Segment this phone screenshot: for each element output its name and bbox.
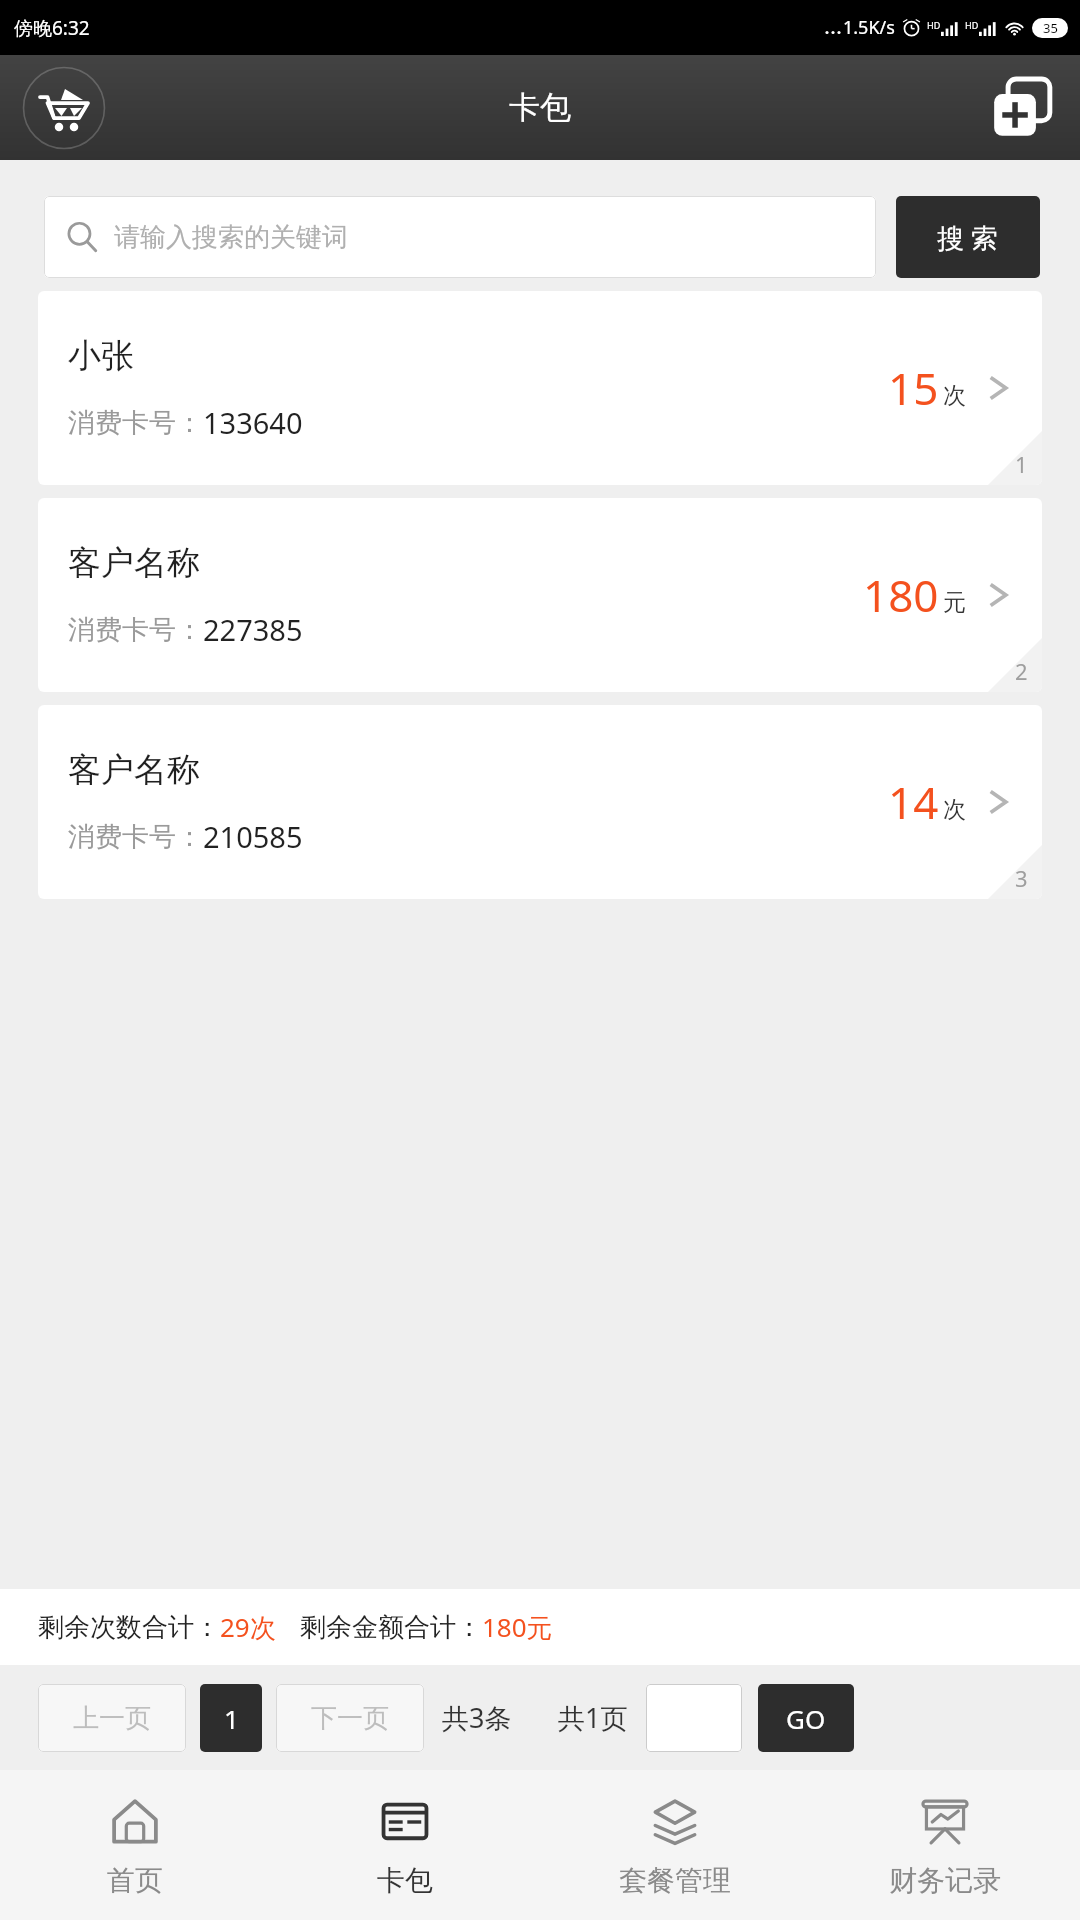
staticText: 客户名称 xyxy=(68,542,200,584)
staticText: GO xyxy=(786,1701,826,1736)
staticText: 小张 xyxy=(68,335,134,377)
staticText: 客户名称 xyxy=(68,749,200,791)
staticText: 套餐管理 xyxy=(619,1863,731,1898)
button[interactable]: 1 xyxy=(200,1684,262,1752)
button[interactable]: 小张 xyxy=(38,291,1042,485)
staticText: 卡包 xyxy=(509,88,571,127)
staticText: 15 xyxy=(888,358,939,418)
staticText: 消费卡号： xyxy=(68,820,203,854)
staticText: 227385 xyxy=(203,610,303,649)
staticText: 消费卡号： xyxy=(68,406,203,440)
staticText: 傍晚6:32 xyxy=(14,15,90,41)
button[interactable]: 购物车 xyxy=(20,64,108,152)
button[interactable]: 卡包 xyxy=(270,1770,540,1920)
staticText: 下一页 xyxy=(311,1702,389,1735)
staticText: 2 xyxy=(1015,656,1028,686)
staticText: 180 xyxy=(863,565,939,625)
staticText: 共3条 xyxy=(442,1699,512,1736)
button[interactable]: 财务记录 xyxy=(810,1770,1080,1920)
staticText: 3 xyxy=(1015,863,1028,893)
staticText: HD xyxy=(927,19,941,31)
staticText: 请输入搜索的关键词 xyxy=(114,221,348,254)
button[interactable]: 套餐管理 xyxy=(540,1770,810,1920)
staticText: 210585 xyxy=(203,817,303,856)
staticText: 财务记录 xyxy=(889,1863,1001,1898)
staticText: 元 xyxy=(943,588,966,617)
button[interactable]: 上一页 xyxy=(38,1684,186,1752)
button[interactable]: 页码输入 xyxy=(646,1684,742,1752)
staticText: HD xyxy=(965,19,979,31)
staticText: 剩余金额合计： xyxy=(300,1611,482,1644)
staticText: 180元 xyxy=(482,1609,553,1645)
staticText: 133640 xyxy=(203,403,303,442)
staticText: 次 xyxy=(943,795,966,824)
button[interactable]: 搜 索 xyxy=(896,196,1040,278)
staticText: 1 xyxy=(224,1701,239,1736)
staticText: 29次 xyxy=(220,1609,276,1645)
staticText: 搜 索 xyxy=(937,219,999,256)
staticText: 次 xyxy=(943,381,966,410)
button[interactable]: 添加卡片 xyxy=(990,76,1054,140)
button[interactable]: 首页 xyxy=(0,1770,270,1920)
staticText: 1 xyxy=(1015,449,1028,479)
staticText: 14 xyxy=(888,772,939,832)
staticText: 共1页 xyxy=(558,1699,628,1736)
button[interactable]: 请输入搜索的关键词 xyxy=(44,196,876,278)
staticText: 首页 xyxy=(107,1863,163,1898)
staticText: 上一页 xyxy=(73,1702,151,1735)
staticText: 卡包 xyxy=(377,1863,433,1898)
staticText: 剩余次数合计： xyxy=(38,1611,220,1644)
staticText: 1.5K/s xyxy=(843,15,895,40)
button[interactable]: GO xyxy=(758,1684,854,1752)
button[interactable]: 下一页 xyxy=(276,1684,424,1752)
button[interactable]: 客户名称 xyxy=(38,705,1042,899)
staticText: 消费卡号： xyxy=(68,613,203,647)
button[interactable]: 客户名称 xyxy=(38,498,1042,692)
staticText: 35 xyxy=(1043,19,1058,37)
